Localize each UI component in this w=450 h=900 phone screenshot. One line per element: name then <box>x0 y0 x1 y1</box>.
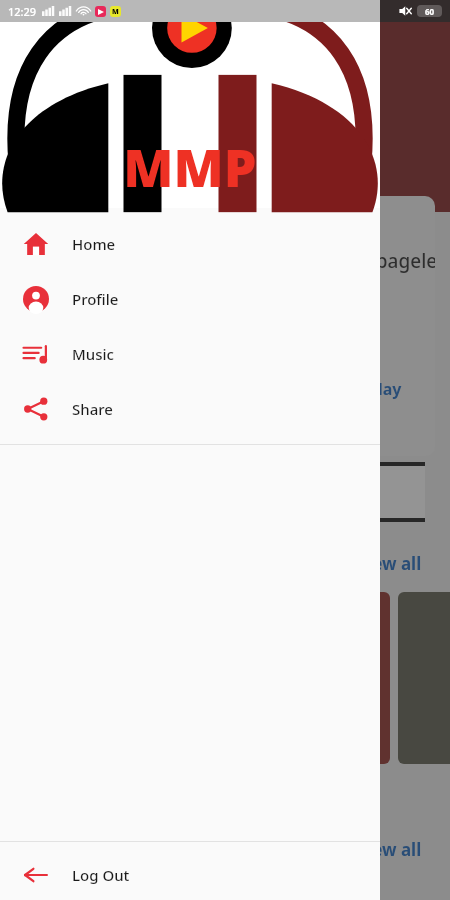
staticText: Home <box>72 234 116 254</box>
button[interactable]: Profile <box>0 271 380 326</box>
staticText: View all <box>356 552 422 575</box>
button[interactable]: Music <box>0 326 380 381</box>
staticText: Gbagele <box>362 248 435 274</box>
staticText: M <box>112 7 119 17</box>
staticText: Share <box>72 399 113 419</box>
staticText: 12:29 <box>8 4 37 19</box>
other: Home <box>23 231 49 257</box>
other: Log Out <box>23 862 49 888</box>
other: Profile <box>23 286 49 312</box>
staticText: 60 <box>425 6 435 17</box>
staticText: MMP <box>123 131 257 202</box>
staticText: View all <box>356 838 422 861</box>
button[interactable]: Home <box>0 216 380 271</box>
staticText: Music <box>72 344 114 364</box>
other: Share <box>23 396 49 422</box>
other: Music <box>23 341 49 367</box>
button[interactable]: Share <box>0 381 380 436</box>
button[interactable]: Log Out <box>0 849 380 900</box>
staticText: Profile <box>72 289 119 309</box>
staticText: Log Out <box>72 865 130 885</box>
staticText: Play <box>368 378 402 400</box>
